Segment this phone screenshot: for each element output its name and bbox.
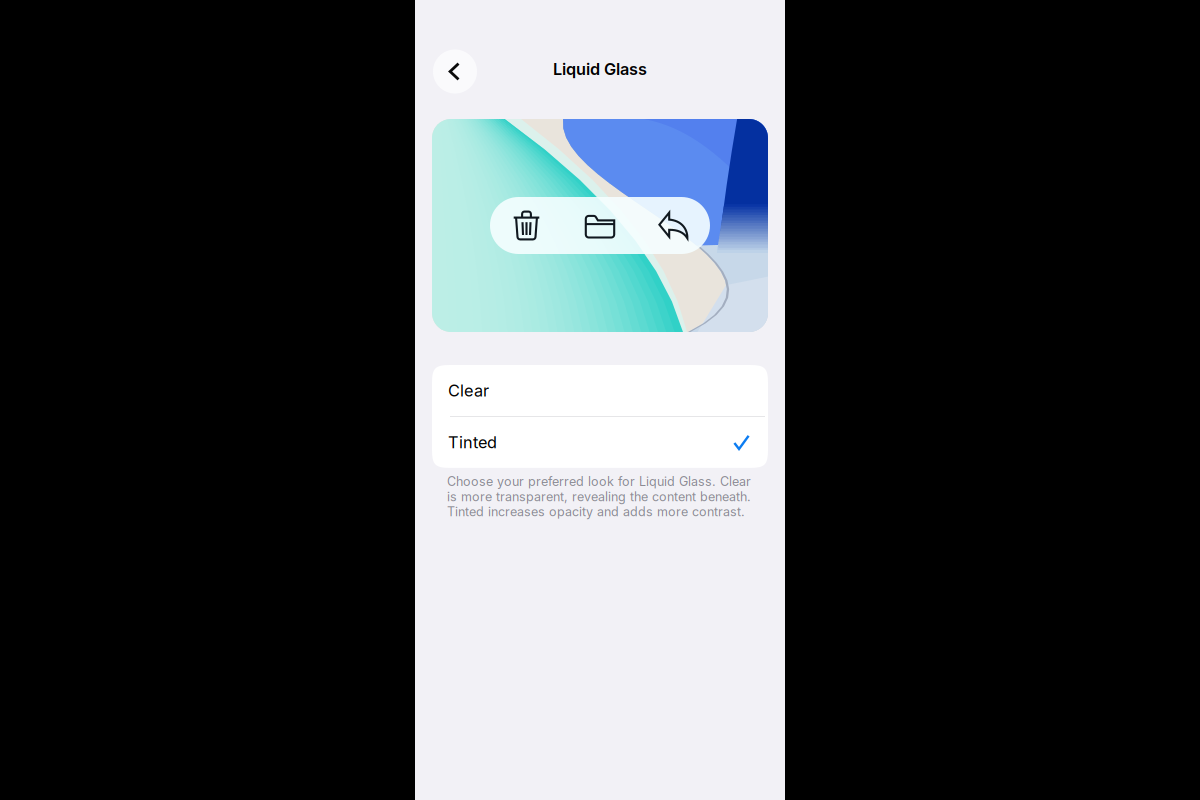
button[interactable]: Move to folder (563, 197, 637, 254)
button[interactable]: Clear (432, 365, 768, 416)
button[interactable]: Delete (490, 197, 563, 254)
staticText: Clear (448, 381, 489, 400)
staticText: Tinted (448, 433, 497, 452)
button[interactable]: Reply (637, 197, 710, 254)
button[interactable]: Tinted (432, 417, 768, 468)
staticText: Liquid Glass (553, 59, 647, 79)
button[interactable]: Back (433, 49, 477, 93)
staticText: Choose your preferred look for Liquid Gl… (447, 474, 751, 519)
